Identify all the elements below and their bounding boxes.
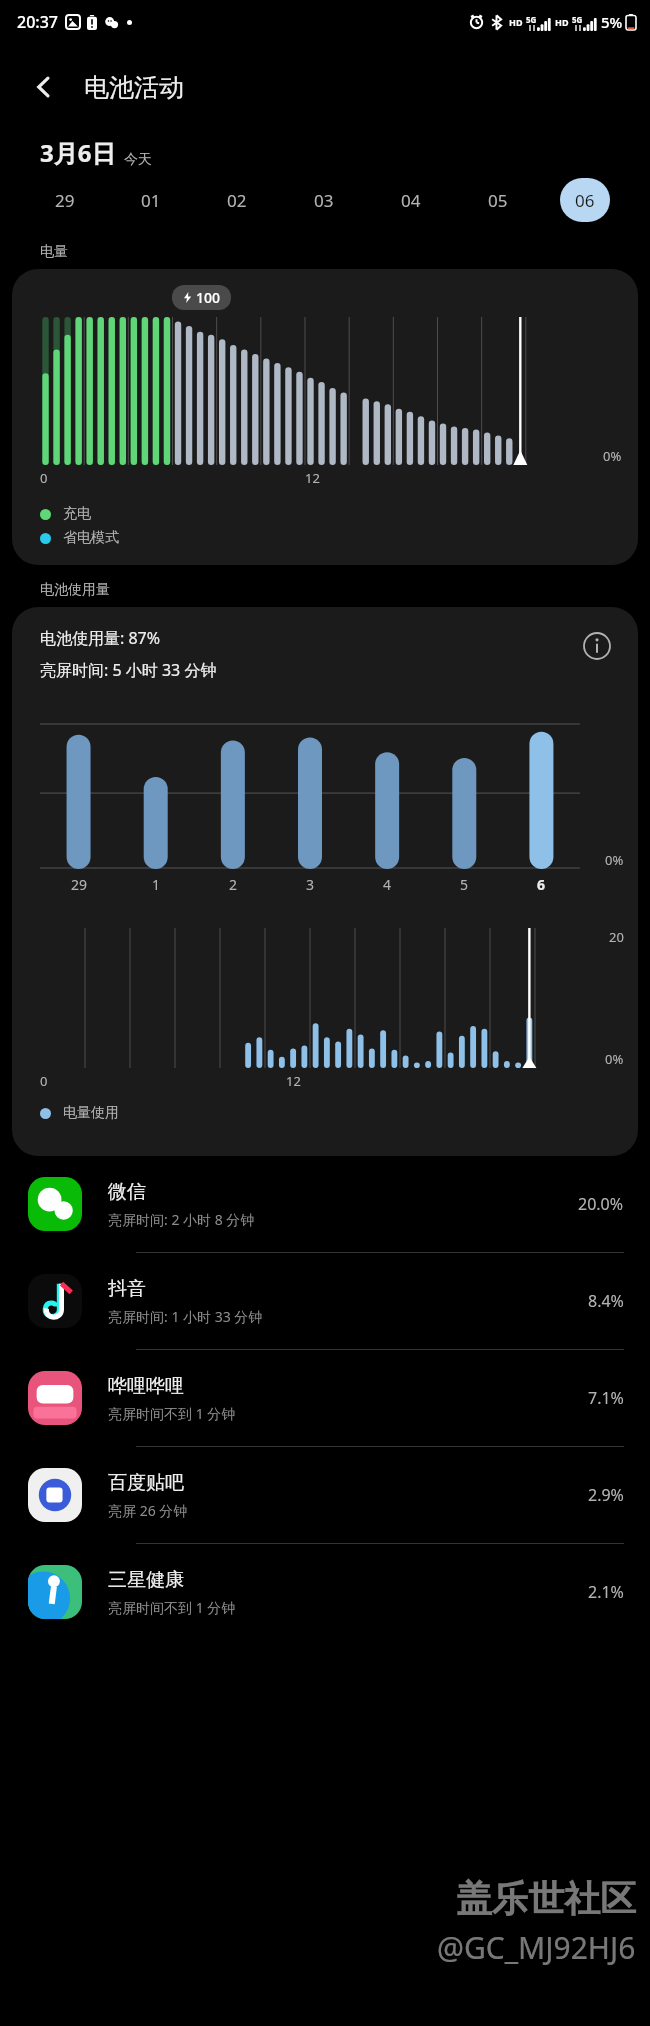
- staticText: 百度贴吧: [108, 1471, 184, 1495]
- staticText: 电量: [40, 243, 68, 261]
- staticText: 12: [305, 469, 320, 487]
- staticText: 盖乐世社区: [456, 1876, 636, 1921]
- button[interactable]: 03: [280, 176, 367, 224]
- button[interactable]: 电池使用量: 87%: [12, 607, 638, 1156]
- staticText: 省电模式: [63, 529, 119, 547]
- staticText: 哗哩哗哩: [108, 1374, 184, 1398]
- button[interactable]: Info: [578, 627, 616, 665]
- staticText: HD: [509, 16, 523, 28]
- staticText: 0%: [605, 1050, 624, 1068]
- button[interactable]: 百度贴吧: [0, 1447, 650, 1543]
- staticText: 03: [314, 189, 334, 212]
- staticText: 4: [383, 875, 392, 894]
- staticText: 2.1%: [588, 1581, 624, 1603]
- button[interactable]: 微信: [0, 1156, 650, 1252]
- staticText: 亮屏时间: 2 小时 8 分钟: [108, 1210, 255, 1229]
- staticText: 电池活动: [84, 72, 184, 103]
- button[interactable]: 04: [367, 176, 454, 224]
- staticText: HD: [555, 16, 569, 28]
- button[interactable]: 29: [22, 176, 108, 224]
- staticText: 电池使用量: 87%: [40, 627, 161, 649]
- staticText: 电池使用量: [40, 581, 110, 599]
- staticText: 亮屏时间: 1 小时 33 分钟: [108, 1307, 263, 1326]
- button[interactable]: 三星健康: [0, 1544, 650, 1640]
- staticText: 亮屏时间不到 1 分钟: [108, 1404, 236, 1423]
- staticText: 20:37: [17, 11, 58, 33]
- staticText: 抖音: [108, 1277, 146, 1301]
- staticText: 亮屏时间不到 1 分钟: [108, 1598, 236, 1617]
- staticText: 充电: [63, 505, 91, 523]
- staticText: 5G: [572, 14, 583, 25]
- staticText: 5G: [526, 14, 537, 25]
- staticText: 0%: [603, 447, 622, 465]
- staticText: @GC_MJ92HJ6: [437, 1927, 636, 1968]
- button[interactable]: 06: [541, 176, 628, 224]
- button[interactable]: 05: [454, 176, 541, 224]
- button[interactable]: 哗哩哗哩: [0, 1350, 650, 1446]
- staticText: 04: [401, 189, 421, 212]
- staticText: 微信: [108, 1180, 146, 1204]
- staticText: 亮屏时间: 5 小时 33 分钟: [40, 659, 217, 681]
- staticText: 0%: [605, 851, 624, 869]
- staticText: 5%: [601, 12, 623, 32]
- staticText: 01: [141, 189, 161, 212]
- staticText: 2.9%: [588, 1484, 624, 1506]
- staticText: 12: [286, 1072, 301, 1090]
- staticText: 3月6日: [40, 136, 116, 169]
- staticText: 29: [71, 875, 88, 894]
- button[interactable]: 抖音: [0, 1253, 650, 1349]
- button[interactable]: Back: [20, 63, 68, 111]
- staticText: 100: [196, 288, 221, 307]
- staticText: 20: [609, 928, 624, 946]
- staticText: 2: [229, 875, 238, 894]
- staticText: 20.0%: [578, 1193, 624, 1215]
- staticText: 0: [40, 1072, 48, 1090]
- staticText: 06: [575, 189, 595, 212]
- staticText: 8.4%: [588, 1290, 624, 1312]
- staticText: 7.1%: [588, 1387, 624, 1409]
- staticText: 3: [306, 875, 315, 894]
- staticText: 三星健康: [108, 1568, 184, 1592]
- staticText: 0: [40, 469, 48, 487]
- button[interactable]: 01: [108, 176, 194, 224]
- staticText: 29: [55, 189, 75, 212]
- staticText: 02: [227, 189, 247, 212]
- staticText: 电量使用: [63, 1104, 119, 1122]
- staticText: 1: [152, 875, 161, 894]
- staticText: 亮屏 26 分钟: [108, 1501, 188, 1520]
- button[interactable]: 02: [194, 176, 280, 224]
- button[interactable]: 100: [12, 269, 638, 565]
- staticText: 6: [537, 875, 546, 894]
- staticText: 05: [488, 189, 508, 212]
- staticText: 今天: [124, 151, 152, 169]
- staticText: 5: [460, 875, 469, 894]
